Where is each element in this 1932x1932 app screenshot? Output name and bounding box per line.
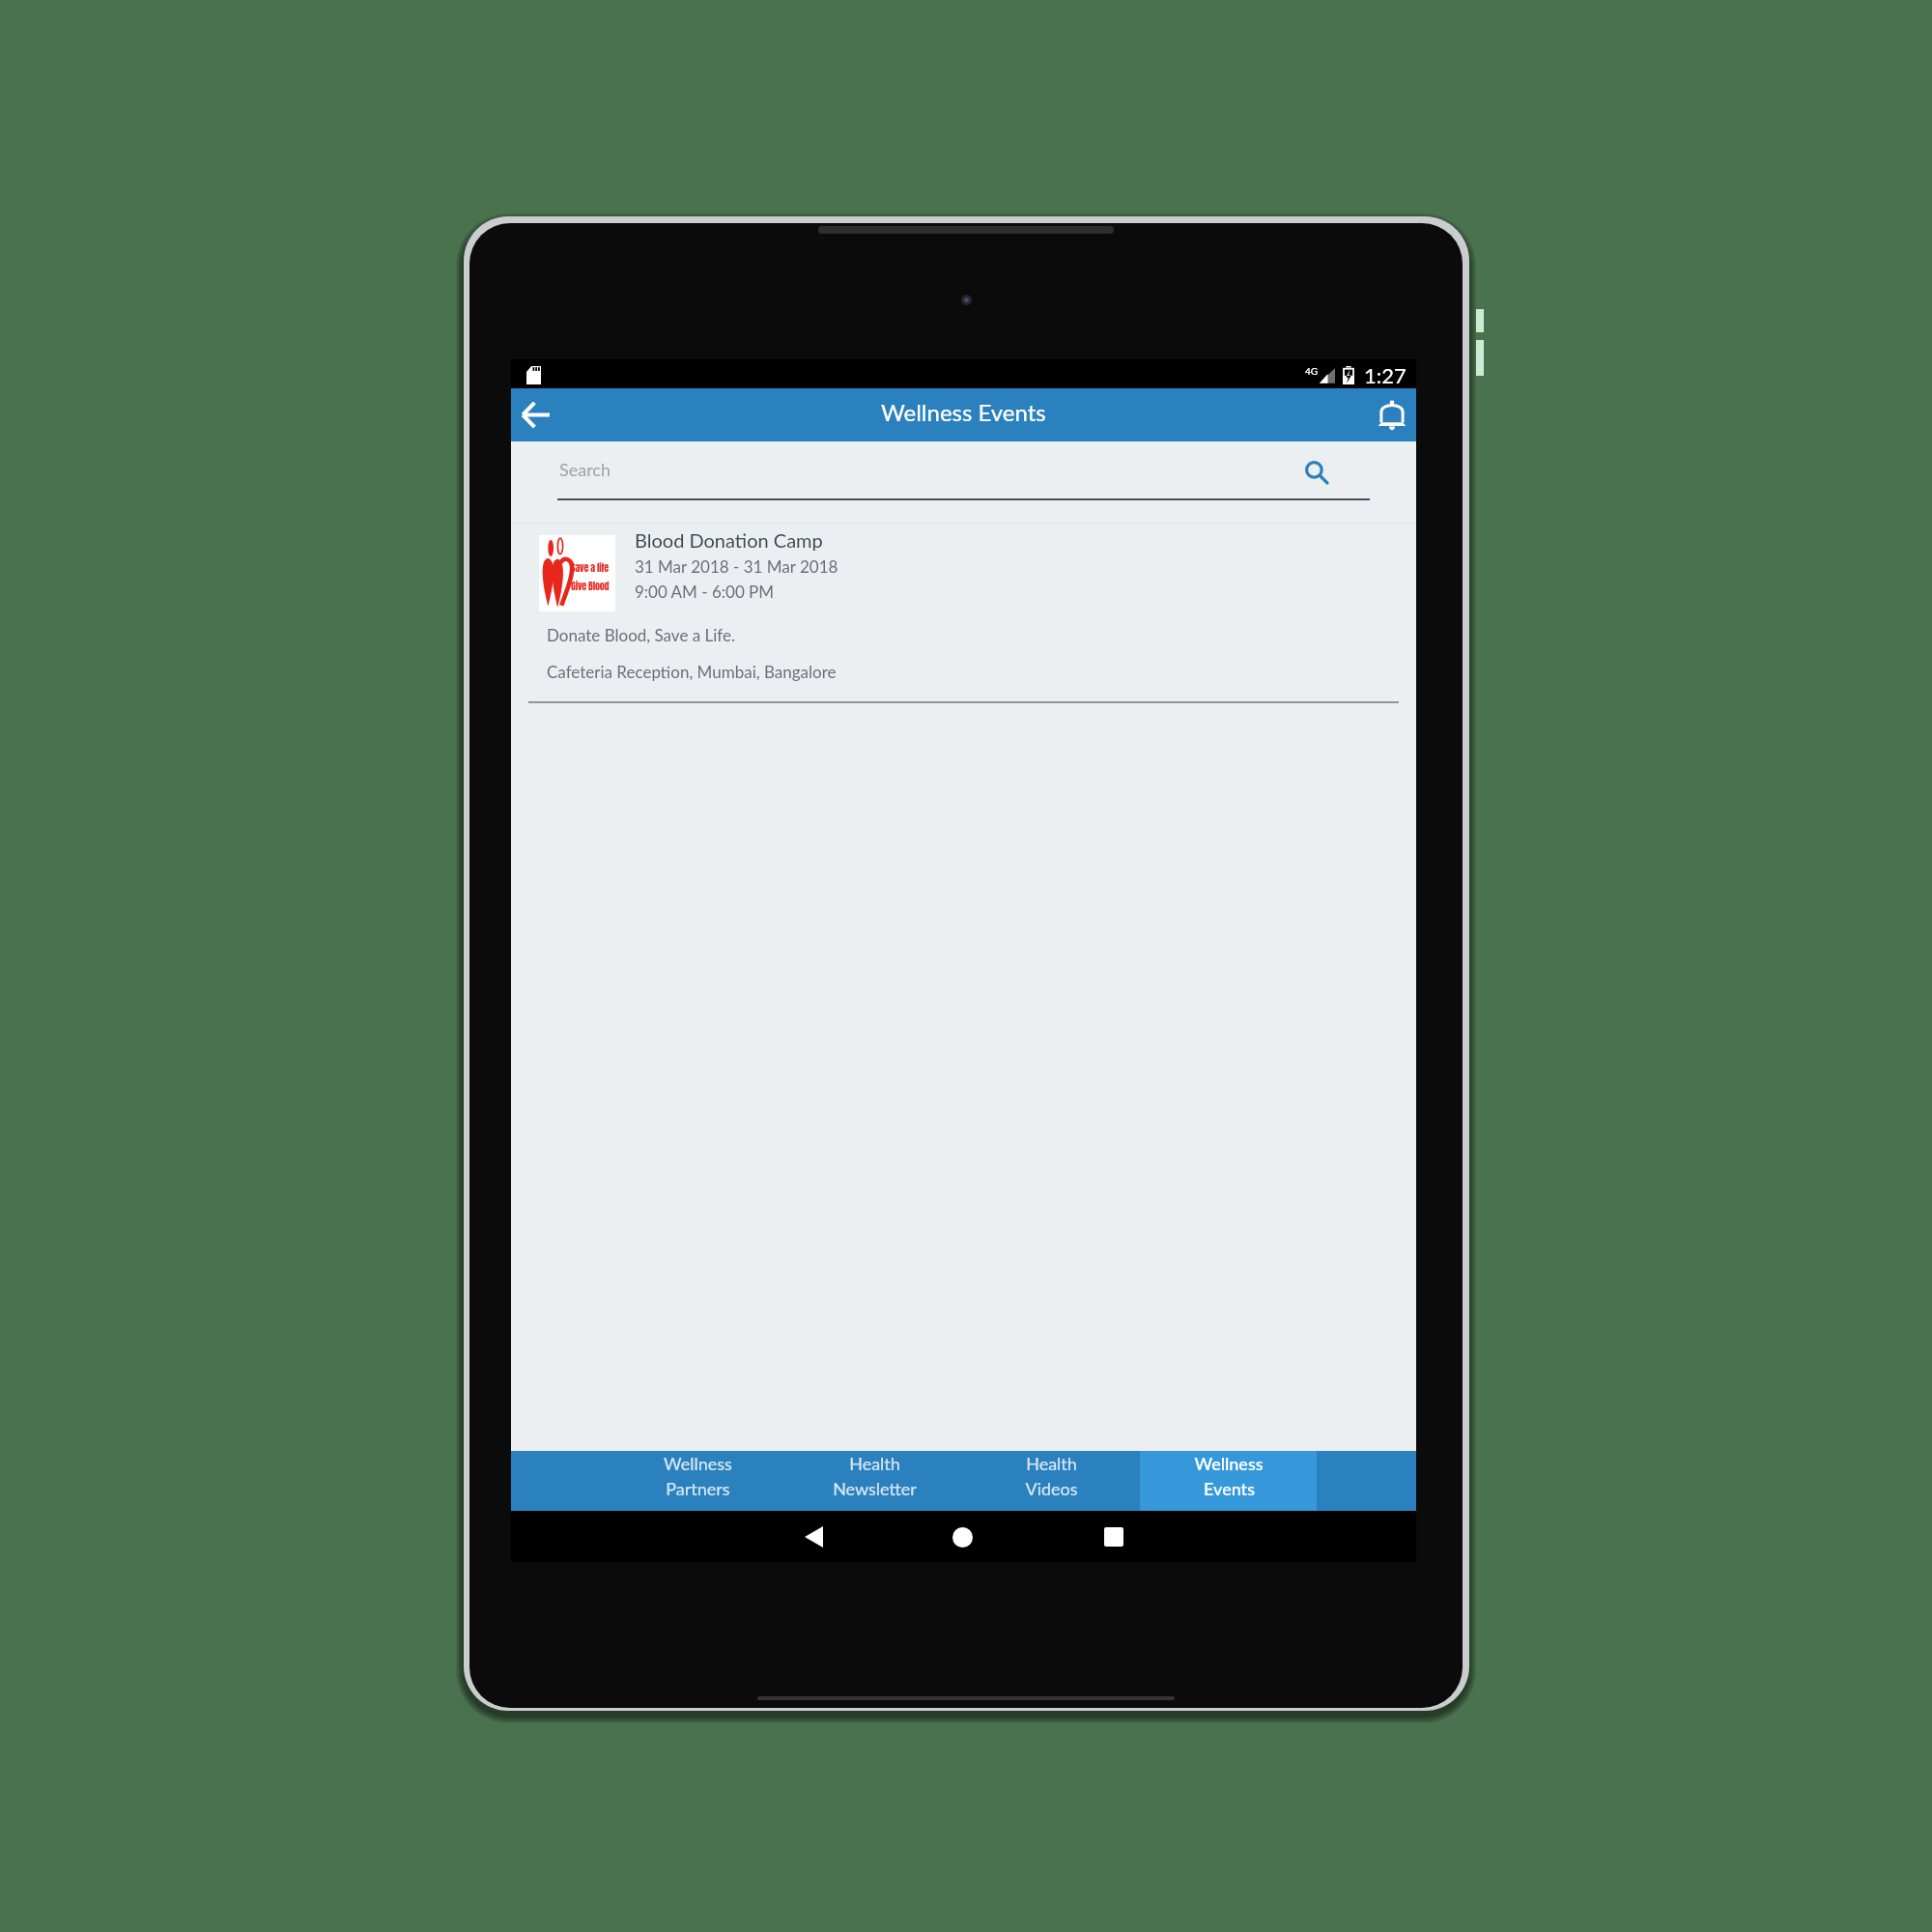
staticText: Blood Donation Camp bbox=[635, 528, 823, 552]
staticText: Cafeteria Reception, Mumbai, Bangalore bbox=[547, 662, 837, 681]
button[interactable]: Wellness bbox=[1140, 1451, 1317, 1511]
staticText: Search bbox=[559, 459, 611, 480]
staticText: 31 Mar 2018 - 31 Mar 2018 bbox=[635, 556, 838, 576]
staticText: Give Blood bbox=[571, 579, 610, 593]
staticText: 1:27 bbox=[1364, 362, 1406, 387]
button[interactable]: Wellness bbox=[610, 1451, 786, 1511]
button[interactable]: Back bbox=[795, 1519, 832, 1555]
button[interactable]: Recent apps bbox=[1095, 1519, 1132, 1555]
button[interactable]: Save a life bbox=[511, 524, 1416, 703]
button[interactable]: Search bbox=[1304, 460, 1329, 485]
staticText: Donate Blood, Save a Life. bbox=[547, 625, 736, 644]
staticText: Wellness bbox=[1194, 1453, 1264, 1474]
button[interactable]: Health bbox=[786, 1451, 963, 1511]
staticText: Wellness Events bbox=[881, 398, 1046, 426]
button[interactable]: Back bbox=[509, 388, 562, 441]
staticText: Save a life bbox=[571, 560, 609, 575]
staticText: Health bbox=[849, 1453, 900, 1474]
button[interactable]: Home bbox=[944, 1519, 980, 1555]
button[interactable]: Health bbox=[963, 1451, 1140, 1511]
button[interactable]: Notifications bbox=[1365, 388, 1418, 441]
staticText: Partners bbox=[666, 1478, 730, 1499]
staticText: 4G bbox=[1305, 365, 1319, 377]
staticText: Newsletter bbox=[833, 1478, 917, 1499]
staticText: Health bbox=[1026, 1453, 1077, 1474]
staticText: Events bbox=[1204, 1478, 1255, 1499]
staticText: Videos bbox=[1025, 1478, 1078, 1499]
staticText: Wellness bbox=[664, 1453, 732, 1474]
staticText: 9:00 AM - 6:00 PM bbox=[635, 582, 775, 601]
